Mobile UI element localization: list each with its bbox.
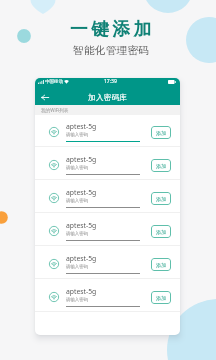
staticText: 请输入密码 <box>66 165 88 171</box>
staticText: 17:39 <box>104 78 117 85</box>
staticText: 添加 <box>156 295 166 301</box>
button[interactable]: 添加 <box>151 225 171 238</box>
staticText: aptest-5g <box>66 287 97 296</box>
staticText: 请输入密码 <box>66 231 88 237</box>
staticText: 请输入密码 <box>66 264 88 270</box>
staticText: 添加 <box>156 262 166 268</box>
staticText: 添加 <box>156 130 166 136</box>
staticText: 智能化管理密码 <box>73 44 150 57</box>
button[interactable]: 添加 <box>151 192 171 205</box>
button[interactable]: aptest-5g <box>35 181 180 214</box>
button[interactable]: 返回 <box>38 91 51 104</box>
staticText: aptest-5g <box>66 188 97 197</box>
button[interactable]: aptest-5g <box>35 148 180 181</box>
button[interactable]: 添加 <box>151 126 171 139</box>
staticText: 添加 <box>156 196 166 202</box>
button[interactable]: 添加 <box>151 291 171 304</box>
staticText: 请输入密码 <box>66 198 88 204</box>
staticText: aptest-5g <box>66 155 97 164</box>
staticText: aptest-5g <box>66 122 97 131</box>
button[interactable]: aptest-5g <box>35 115 180 148</box>
button[interactable]: aptest-5g <box>35 214 180 247</box>
staticText: 一键添加 <box>70 18 155 40</box>
staticText: 添加 <box>156 163 166 169</box>
staticText: 请输入密码 <box>66 132 88 138</box>
staticText: 加入密码库 <box>88 93 127 102</box>
button[interactable]: 添加 <box>151 159 171 172</box>
staticText: aptest-5g <box>66 254 97 263</box>
staticText: 请输入密码 <box>66 297 88 303</box>
staticText: aptest-5g <box>66 221 97 230</box>
button[interactable]: 添加 <box>151 258 171 271</box>
staticText: 添加 <box>156 229 166 235</box>
button[interactable]: aptest-5g <box>35 280 180 313</box>
button[interactable]: aptest-5g <box>35 247 180 280</box>
staticText: 中国移动 <box>45 79 63 85</box>
staticText: 我的WiFi列表 <box>41 107 69 113</box>
